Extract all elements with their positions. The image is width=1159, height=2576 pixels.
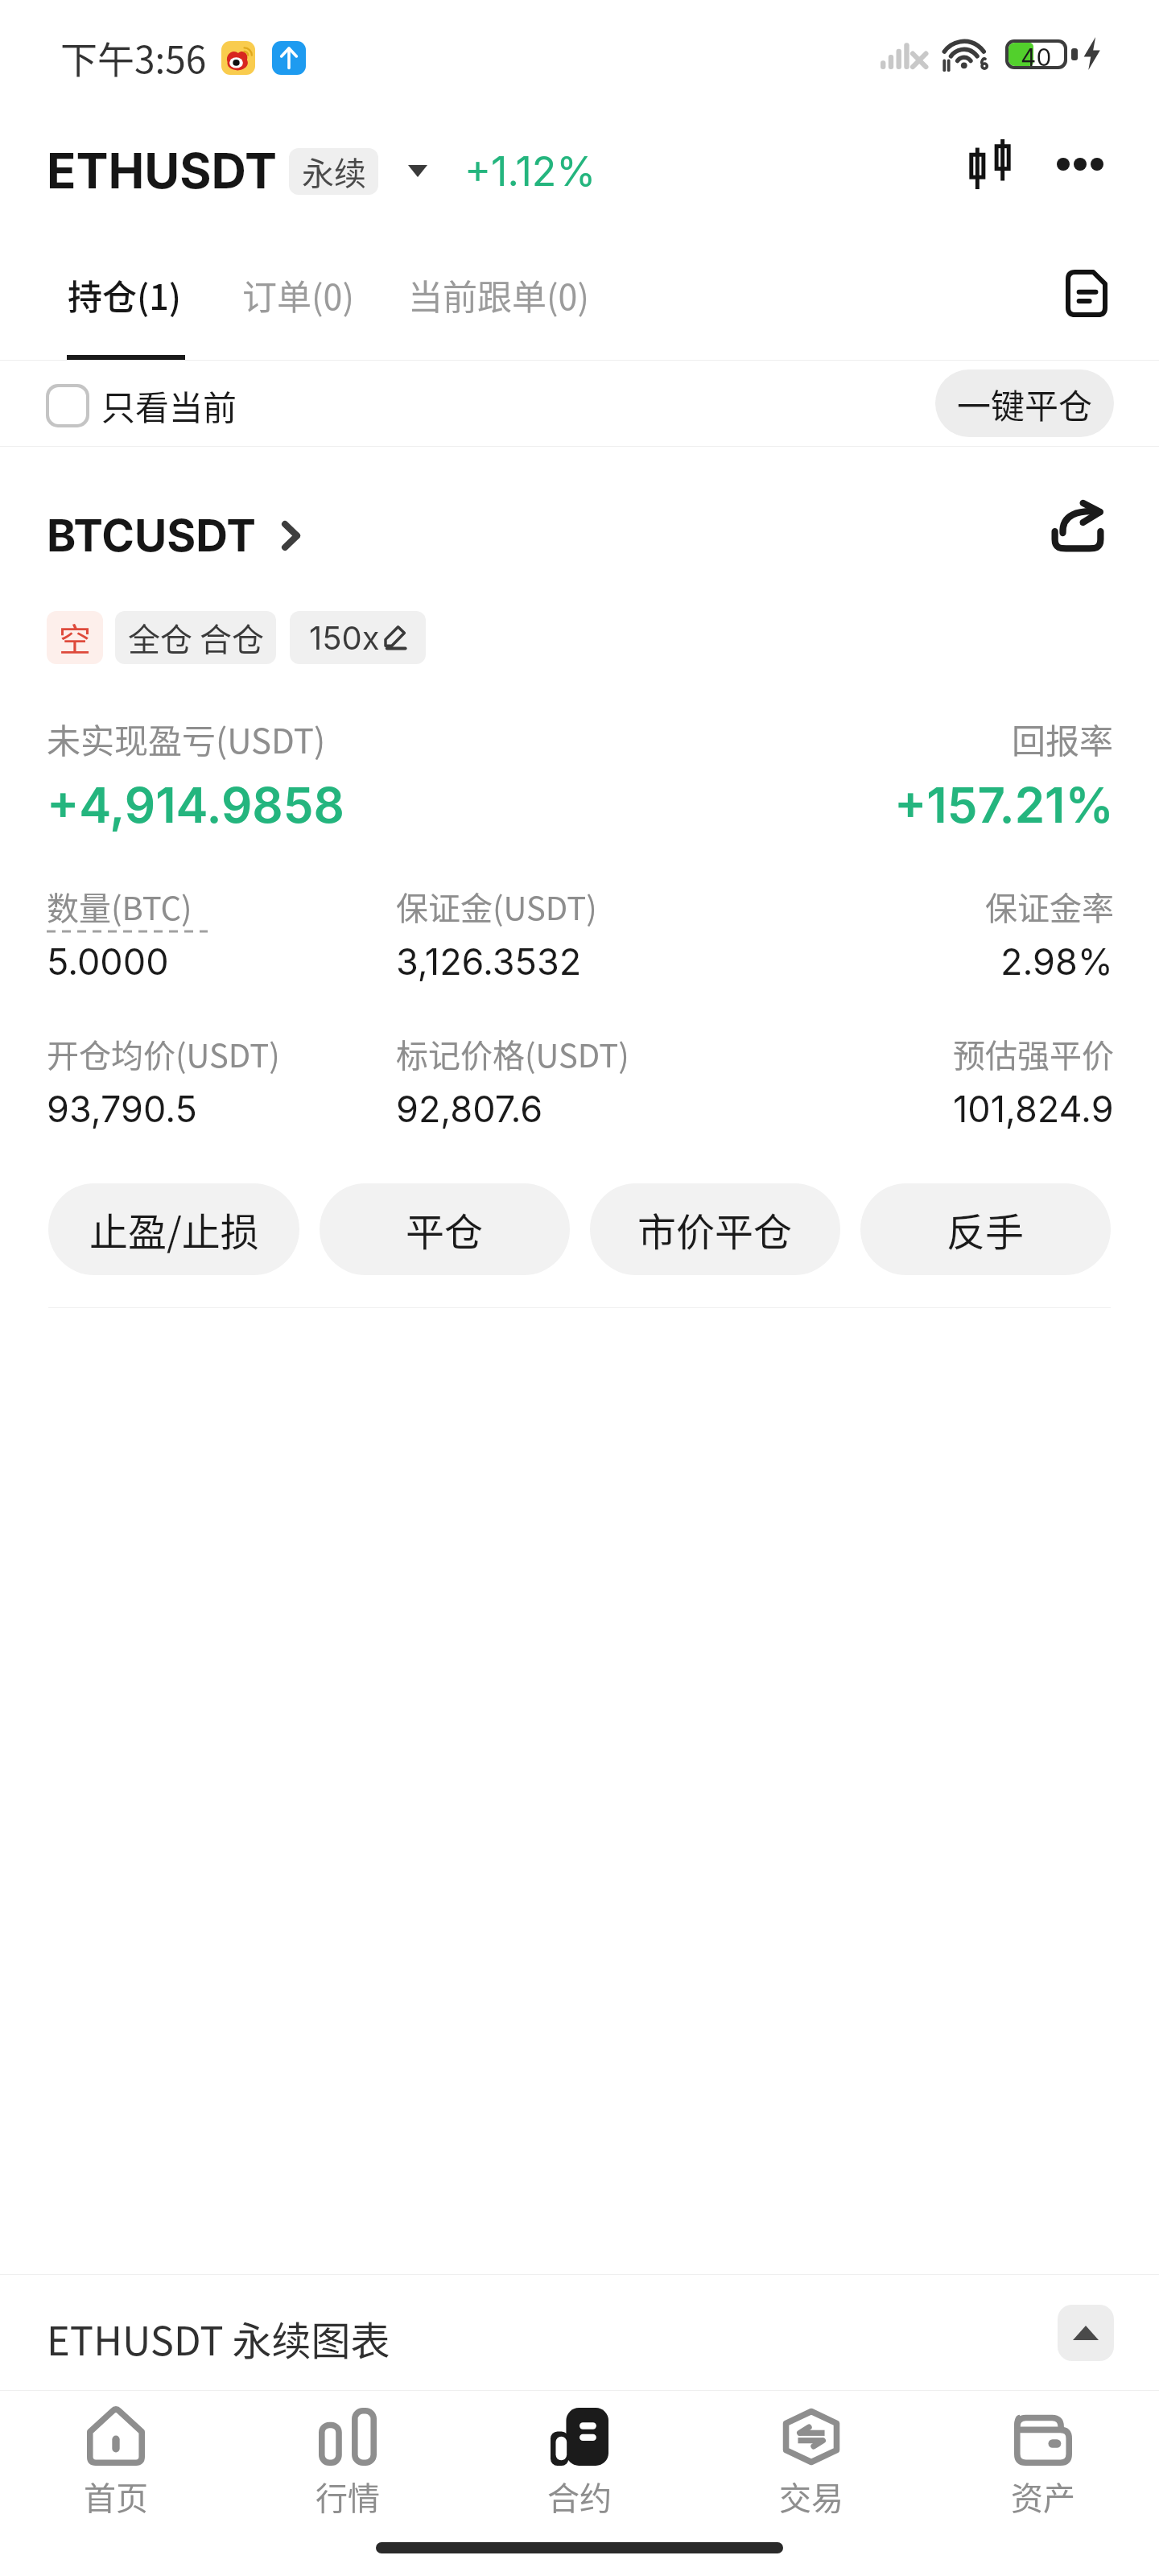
staticText: 2.98% [1000, 939, 1114, 983]
button[interactable]: 交易 [695, 2391, 927, 2520]
staticText: 首页 [84, 2473, 148, 2520]
button[interactable]: 当前跟单(0) [408, 270, 589, 320]
staticText: +1.12% [464, 147, 596, 196]
button[interactable]: 资产 [927, 2391, 1159, 2520]
staticText: 5.0000 [47, 939, 169, 983]
staticText: 150x [309, 618, 380, 657]
button[interactable]: 反手 [860, 1183, 1111, 1275]
staticText: 反手 [947, 1201, 1025, 1257]
staticText: 保证金率 [985, 883, 1114, 930]
button[interactable]: BTCUSDT [47, 509, 300, 563]
staticText: ETHUSDT 永续图表 [47, 2310, 390, 2367]
staticText: +4,914.9858 [47, 776, 344, 835]
button[interactable]: 分享 [1044, 493, 1112, 560]
staticText: 回报率 [1012, 714, 1114, 763]
staticText: 资产 [1011, 2473, 1075, 2520]
staticText: 交易 [779, 2473, 843, 2520]
staticText: 止盈/止损 [89, 1201, 259, 1257]
button[interactable]: 止盈/止损 [48, 1183, 299, 1275]
button[interactable]: 只看当前 [46, 381, 237, 430]
staticText: 保证金(USDT) [396, 883, 597, 930]
button[interactable]: 首页 [0, 2391, 232, 2520]
staticText: 合约 [547, 2473, 612, 2520]
button[interactable]: 平仓 [320, 1183, 570, 1275]
staticText: 市价平仓 [637, 1201, 793, 1257]
staticText: 数量(BTC) [47, 883, 192, 930]
staticText: 92,807.6 [396, 1087, 543, 1130]
staticText: 93,790.5 [47, 1087, 197, 1130]
staticText: 开仓均价(USDT) [47, 1030, 280, 1077]
staticText: 一键平仓 [957, 379, 1093, 428]
button[interactable]: 合约 [464, 2391, 695, 2520]
button[interactable]: 更多 [1048, 132, 1112, 196]
staticText: 下午3:56 [60, 31, 207, 85]
staticText: 101,824.9 [953, 1087, 1114, 1130]
staticText: 3,126.3532 [396, 939, 582, 983]
staticText: ETHUSDT [47, 142, 277, 200]
button[interactable]: 展开图表 [1058, 2305, 1114, 2361]
staticText: 预估强平价 [953, 1030, 1114, 1077]
staticText: 全仓 合仓 [128, 614, 264, 661]
staticText: BTCUSDT [47, 509, 256, 563]
staticText: 只看当前 [101, 381, 237, 430]
staticText: 标记价格(USDT) [396, 1030, 629, 1077]
staticText: 40 [1021, 43, 1052, 66]
staticText: 行情 [316, 2473, 380, 2520]
staticText: 永续 [302, 148, 366, 195]
staticText: 平仓 [406, 1201, 484, 1257]
button[interactable]: 订单(0) [242, 270, 354, 320]
button[interactable]: 订单记录 [1053, 259, 1120, 327]
staticText: 未实现盈亏(USDT) [47, 714, 326, 763]
button[interactable]: K线图 [958, 132, 1022, 196]
button[interactable]: 150x [290, 611, 426, 664]
button[interactable]: 一键平仓 [935, 369, 1114, 437]
button[interactable]: 行情 [232, 2391, 464, 2520]
staticText: 空 [59, 614, 91, 661]
button[interactable]: ETHUSDT [47, 142, 596, 200]
staticText: +157.21% [894, 776, 1114, 835]
button[interactable]: 持仓(1) [68, 270, 182, 320]
button[interactable]: 市价平仓 [590, 1183, 840, 1275]
